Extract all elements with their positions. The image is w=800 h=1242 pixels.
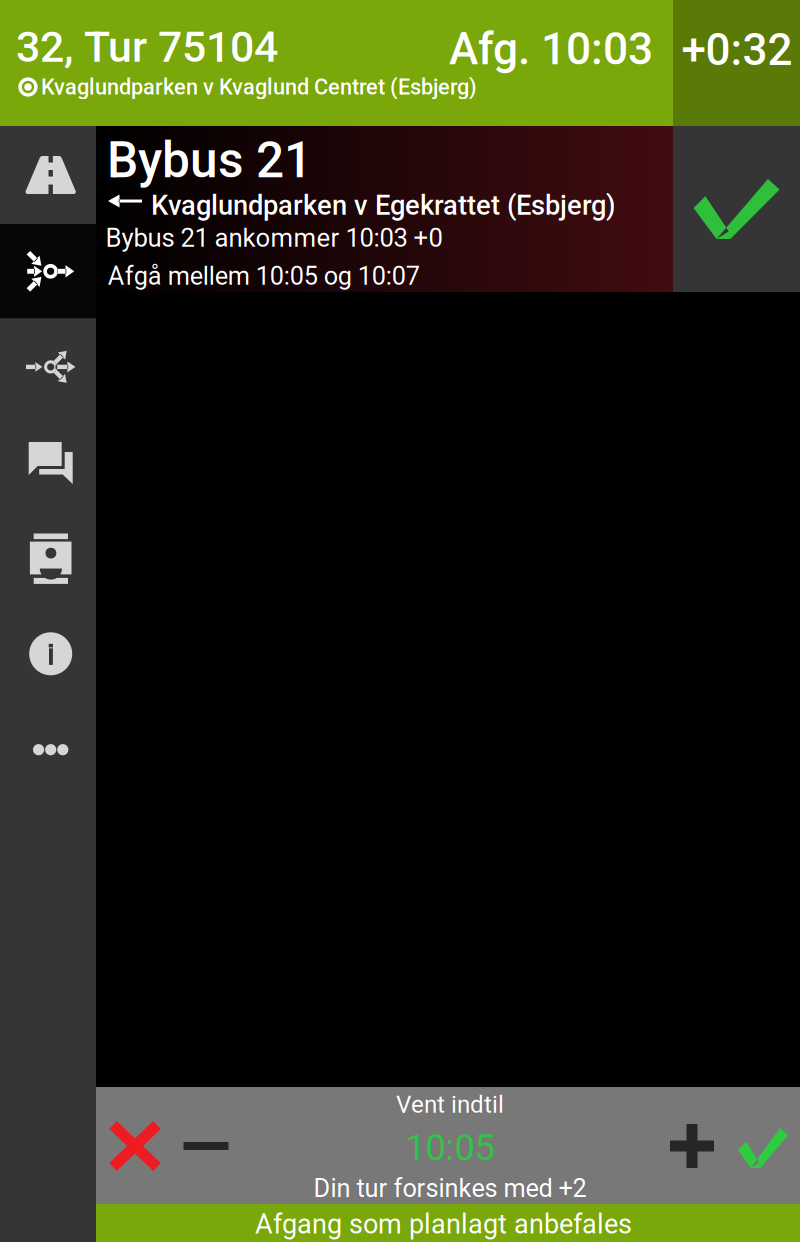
staticText: Vent indtil [396,1090,504,1119]
button[interactable]: Confirm wait time [725,1089,800,1206]
button[interactable]: Confirm arrival [673,126,800,292]
staticText: 10:05 [405,1126,494,1169]
staticText: Afgang som planlagt anbefales [255,1208,632,1240]
staticText: +0:32 [681,24,792,76]
button[interactable]: Route [0,126,96,224]
button[interactable]: More [0,702,96,798]
button[interactable]: Afgang som planlagt anbefales [96,1204,800,1242]
staticText: Afg. 10:03 [449,23,653,75]
staticText: Afgå mellem 10:05 og 10:07 [108,261,420,291]
button[interactable]: Messages [0,415,96,511]
staticText: Kvaglundparken v Egekrattet (Esbjerg) [151,189,616,221]
staticText: Bybus 21 ankommer 10:03 +0 [105,223,442,253]
button[interactable]: Arrivals [0,224,96,321]
staticText: 32, Tur 75104 [16,22,278,72]
button[interactable]: Decrease wait time [168,1087,244,1204]
button[interactable]: Information [0,606,96,702]
staticText: Din tur forsinkes med +2 [313,1174,586,1203]
button[interactable]: Increase wait time [654,1087,730,1204]
button[interactable]: Cancel trip [92,1087,178,1204]
staticText: Kvaglundparken v Kvaglund Centret (Esbje… [41,74,477,100]
button[interactable]: Contacts [0,511,96,607]
button[interactable]: Departures [0,318,96,414]
staticText: Bybus 21 [107,131,312,189]
